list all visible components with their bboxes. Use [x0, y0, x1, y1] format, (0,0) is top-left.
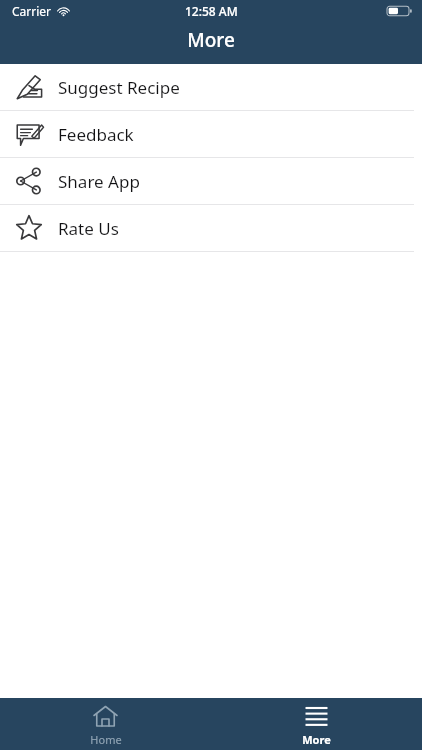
staticText: Feedback: [58, 123, 134, 146]
button[interactable]: Suggest Recipe: [0, 64, 422, 110]
button[interactable]: Feedback: [0, 111, 422, 157]
staticText: Share App: [58, 170, 140, 193]
staticText: Suggest Recipe: [58, 76, 180, 99]
staticText: Rate Us: [58, 217, 119, 240]
staticText: More: [302, 732, 331, 747]
button[interactable]: Share App: [0, 158, 422, 204]
staticText: Home: [90, 732, 122, 747]
staticText: 12:58 AM: [185, 3, 238, 19]
staticText: More: [187, 27, 235, 53]
button[interactable]: Rate Us: [0, 205, 422, 251]
staticText: Carrier: [12, 3, 52, 19]
button[interactable]: More: [211, 698, 422, 750]
button[interactable]: Home: [0, 698, 211, 750]
